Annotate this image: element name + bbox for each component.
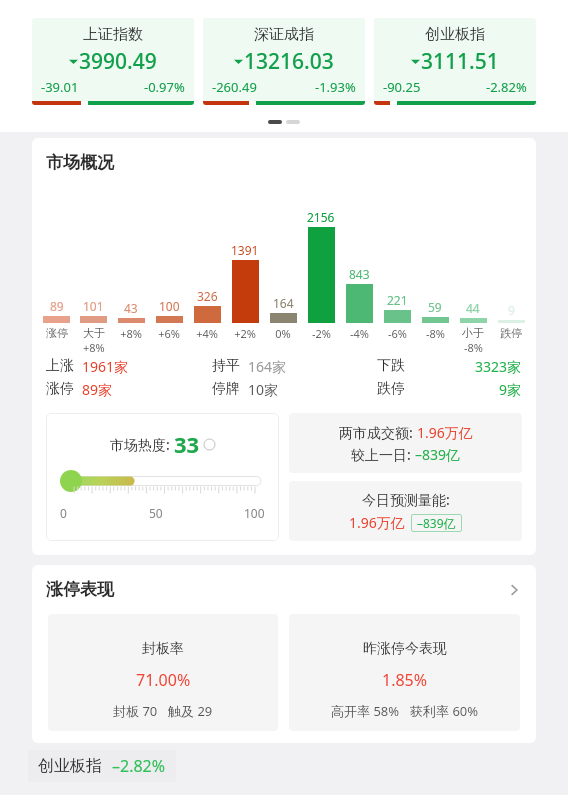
- button[interactable]: 两市成交额:: [289, 413, 522, 473]
- staticText: 上涨: [46, 357, 74, 375]
- staticText: 9家: [499, 380, 522, 399]
- button[interactable]: 今日预测量能:: [289, 481, 522, 541]
- staticText: 昨涨停今表现: [363, 640, 447, 658]
- staticText: 市场概况: [46, 152, 114, 173]
- staticText: 跌停: [500, 326, 522, 340]
- staticText: 跌停: [377, 380, 405, 398]
- button[interactable]: 涨停表现: [32, 565, 536, 600]
- staticText: 71.00%: [136, 669, 191, 691]
- staticText: 涨停: [46, 326, 68, 340]
- staticText: 0%: [275, 326, 291, 341]
- staticText: 164家: [248, 357, 287, 376]
- staticText: 1391: [231, 242, 259, 258]
- staticText: 59: [428, 299, 442, 315]
- staticText: 100: [159, 298, 180, 314]
- staticText: 小于: [462, 326, 484, 340]
- staticText: 创业板指: [425, 25, 485, 44]
- staticText: 1.85%: [382, 669, 428, 691]
- staticText: 164: [273, 295, 294, 311]
- staticText: 高开率 58%: [331, 702, 400, 720]
- staticText: 今日预测量能:: [362, 490, 450, 509]
- staticText: -1.93%: [315, 78, 356, 96]
- staticText: +6%: [158, 326, 180, 341]
- staticText: 下跌: [377, 357, 405, 375]
- staticText: -90.25: [383, 78, 421, 96]
- button[interactable]: 上证指数: [32, 18, 194, 105]
- staticText: 1.96万亿: [417, 423, 473, 442]
- button[interactable]: 封板率: [48, 614, 278, 731]
- staticText: -8%: [426, 326, 445, 341]
- staticText: 涨停: [46, 380, 74, 398]
- staticText: 843: [349, 266, 370, 282]
- staticText: -8%: [464, 340, 483, 353]
- staticText: 3323家: [475, 357, 522, 376]
- staticText: 89家: [82, 380, 113, 399]
- other: Help about market heat: [204, 439, 215, 450]
- button[interactable]: 创业板指: [374, 18, 536, 105]
- staticText: –839亿: [415, 445, 461, 464]
- staticText: 创业板指: [38, 756, 102, 776]
- staticText: 大于: [83, 326, 105, 340]
- staticText: -4%: [350, 326, 369, 341]
- button[interactable]: 深证成指: [203, 18, 365, 105]
- staticText: 触及 29: [168, 702, 213, 720]
- staticText: 33: [174, 429, 200, 459]
- button[interactable]: 昨涨停今表现: [289, 614, 520, 731]
- staticText: 两市成交额:: [339, 423, 417, 442]
- staticText: -6%: [388, 326, 407, 341]
- other: More limit-up details: [506, 582, 522, 598]
- staticText: 326: [197, 288, 218, 304]
- staticText: -260.49: [212, 78, 257, 96]
- staticText: 9: [508, 302, 515, 318]
- staticText: 89: [50, 298, 64, 314]
- staticText: +8%: [120, 326, 142, 341]
- staticText: 停牌: [212, 380, 240, 398]
- staticText: -0.97%: [144, 78, 185, 96]
- staticText: 1.96万亿: [349, 513, 405, 532]
- staticText: +4%: [196, 326, 218, 341]
- staticText: 3990.49: [79, 47, 157, 76]
- staticText: 13216.03: [244, 47, 334, 76]
- staticText: -39.01: [41, 78, 79, 96]
- staticText: –2.82%: [112, 755, 166, 777]
- staticText: -2.82%: [486, 78, 527, 96]
- staticText: 3111.51: [421, 47, 499, 76]
- staticText: 100: [244, 505, 265, 521]
- staticText: 持平: [212, 357, 240, 375]
- staticText: +2%: [234, 326, 256, 341]
- staticText: 101: [83, 298, 104, 314]
- staticText: 1961家: [82, 357, 129, 376]
- staticText: 封板率: [142, 640, 184, 658]
- staticText: 较上一日:: [351, 445, 415, 464]
- staticText: 221: [387, 292, 408, 308]
- staticText: –839亿: [417, 515, 456, 531]
- staticText: 0: [60, 505, 67, 521]
- staticText: -2%: [312, 326, 331, 341]
- staticText: 涨停表现: [46, 579, 114, 600]
- button[interactable]: 市场热度:: [46, 413, 279, 541]
- staticText: 50: [149, 505, 163, 521]
- staticText: 44: [466, 300, 480, 316]
- staticText: 2156: [307, 209, 335, 225]
- staticText: 43: [124, 300, 138, 316]
- button[interactable]: 创业板指: [28, 750, 176, 782]
- staticText: 获利率 60%: [410, 702, 479, 720]
- staticText: 封板 70: [113, 702, 158, 720]
- staticText: 10家: [248, 380, 279, 399]
- staticText: 市场热度:: [110, 435, 174, 454]
- staticText: +8%: [83, 340, 105, 353]
- staticText: 上证指数: [83, 25, 143, 44]
- staticText: 深证成指: [254, 25, 314, 44]
